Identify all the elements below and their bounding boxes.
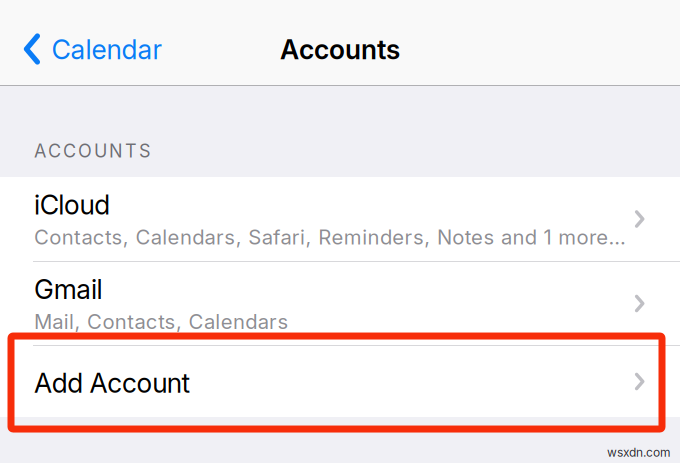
staticText: Gmail: [34, 273, 103, 305]
button[interactable]: Add Account: [0, 346, 680, 417]
staticText: Mail, Contacts, Calendars: [34, 309, 288, 334]
staticText: Calendar: [51, 33, 162, 66]
staticText: wsxdn.com: [607, 445, 671, 459]
button[interactable]: Calendar: [0, 0, 180, 68]
staticText: Accounts: [280, 33, 400, 66]
button[interactable]: Gmail: [0, 262, 680, 345]
staticText: Add Account: [34, 367, 190, 399]
button[interactable]: iCloud: [0, 177, 680, 261]
staticText: A C C O U N T S: [34, 140, 151, 162]
staticText: Contacts, Calendars, Safari, Reminders, …: [34, 225, 626, 249]
staticText: iCloud: [34, 189, 110, 221]
